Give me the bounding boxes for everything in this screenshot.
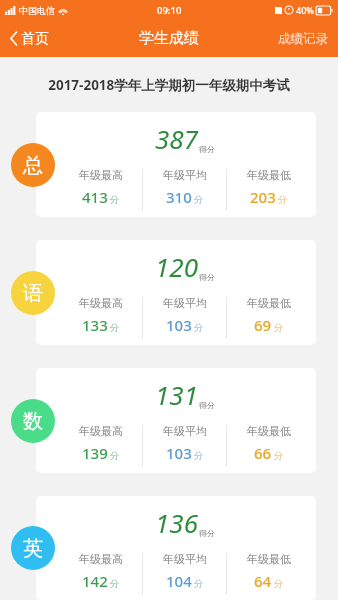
- staticText: 387: [155, 121, 198, 156]
- staticText: 139: [82, 443, 108, 463]
- staticText: 中国电信: [19, 5, 55, 16]
- staticText: 年级平均: [163, 168, 207, 182]
- staticText: 分: [110, 450, 120, 462]
- staticText: 语: [23, 281, 43, 306]
- staticText: 09:10: [157, 4, 182, 17]
- staticText: 分: [194, 578, 204, 590]
- staticText: 得分: [199, 272, 215, 282]
- staticText: 分: [274, 578, 284, 590]
- staticText: 413: [82, 187, 108, 207]
- staticText: 成绩记录: [278, 31, 328, 47]
- button[interactable]: 387: [36, 112, 316, 217]
- button[interactable]: 语: [11, 271, 55, 315]
- staticText: 年级最高: [79, 552, 123, 566]
- staticText: 得分: [199, 528, 215, 538]
- staticText: 数: [23, 409, 43, 434]
- staticText: 首页: [21, 30, 49, 48]
- button[interactable]: 首页: [0, 20, 61, 57]
- button[interactable]: 成绩记录: [268, 20, 338, 57]
- staticText: 英: [23, 536, 43, 561]
- staticText: 年级平均: [163, 552, 207, 566]
- staticText: 142: [82, 571, 108, 591]
- staticText: 分: [194, 194, 204, 206]
- staticText: 年级平均: [163, 424, 207, 438]
- staticText: 年级最低: [247, 296, 291, 310]
- staticText: 年级最高: [79, 168, 123, 182]
- staticText: 得分: [199, 400, 215, 410]
- staticText: 年级最低: [247, 552, 291, 566]
- staticText: 分: [274, 322, 284, 334]
- staticText: 203: [250, 187, 276, 207]
- button[interactable]: 数: [11, 399, 55, 443]
- staticText: 69: [254, 315, 272, 335]
- staticText: 分: [274, 450, 284, 462]
- staticText: 133: [82, 315, 108, 335]
- staticText: 年级最高: [79, 424, 123, 438]
- staticText: 总: [23, 153, 43, 178]
- staticText: 2017-2018学年上学期初一年级期中考试: [48, 76, 290, 94]
- button[interactable]: 120: [36, 240, 316, 345]
- staticText: 学生成绩: [139, 29, 199, 48]
- staticText: 分: [278, 194, 288, 206]
- staticText: 120: [155, 249, 198, 284]
- button[interactable]: 英: [11, 526, 55, 570]
- staticText: 分: [110, 578, 120, 590]
- staticText: 104: [166, 571, 192, 591]
- staticText: 103: [166, 443, 192, 463]
- staticText: 310: [166, 187, 192, 207]
- staticText: 分: [110, 322, 120, 334]
- staticText: 131: [155, 377, 198, 412]
- staticText: 年级最低: [247, 168, 291, 182]
- button[interactable]: 总: [11, 143, 55, 187]
- staticText: 66: [254, 443, 272, 463]
- staticText: 年级最高: [79, 296, 123, 310]
- staticText: 40%: [296, 4, 314, 16]
- staticText: 年级最低: [247, 424, 291, 438]
- button[interactable]: 131: [36, 368, 316, 473]
- staticText: 103: [166, 315, 192, 335]
- staticText: 136: [155, 505, 198, 540]
- staticText: 年级平均: [163, 296, 207, 310]
- staticText: 得分: [199, 144, 215, 154]
- staticText: 分: [194, 450, 204, 462]
- button[interactable]: 136: [36, 496, 316, 600]
- staticText: 分: [194, 322, 204, 334]
- staticText: 分: [110, 194, 120, 206]
- staticText: 64: [254, 571, 272, 591]
